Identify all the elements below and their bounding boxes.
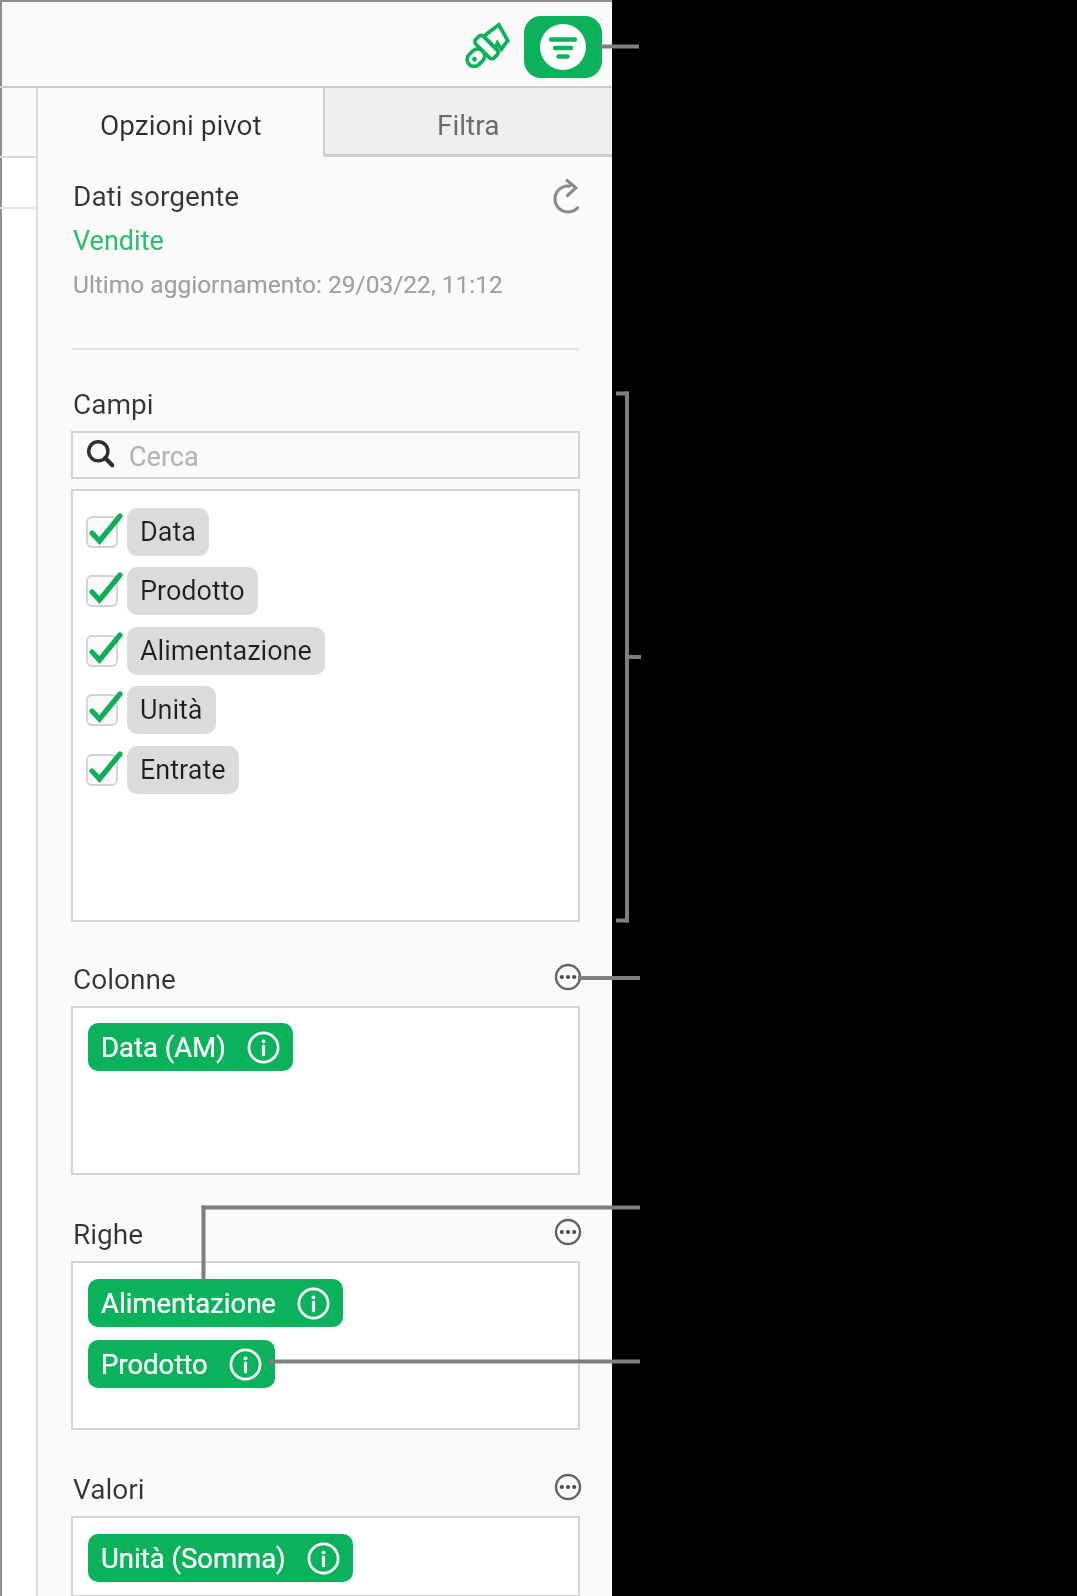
button[interactable]: Prodotto [87,567,258,615]
button[interactable]: Righe options [548,1212,588,1252]
staticText: Cerca [129,441,199,473]
button[interactable]: Alimentazione [87,627,325,675]
button[interactable]: Data [87,508,209,556]
button[interactable]: Valori options [548,1467,588,1507]
staticText: Data (AM) [101,1031,226,1063]
button[interactable]: Pivot options [524,16,602,78]
staticText: Data [140,516,196,548]
button[interactable]: Filtra [324,88,612,156]
button[interactable]: Cerca [72,432,579,478]
staticText: Entrate [140,754,226,786]
button[interactable]: Entrate [87,746,239,794]
button[interactable]: Prodotto [88,1340,275,1388]
staticText: Ultimo aggiornamento: 29/03/22, 11:12 [73,270,503,299]
button[interactable]: Format [457,14,521,78]
staticText: Campi [73,388,154,421]
staticText: Prodotto [140,575,245,607]
button[interactable]: Vendite [0,0,91,32]
button[interactable]: Unità [87,686,216,734]
staticText: Unità [140,694,203,726]
button[interactable]: Refresh [549,180,587,218]
staticText: Unità (Somma) [101,1542,286,1574]
staticText: Opzioni pivot [100,109,262,142]
staticText: Righe [73,1218,144,1251]
staticText: Filtra [437,109,500,142]
button[interactable]: Unità (Somma) [88,1534,353,1582]
staticText: Prodotto [101,1348,208,1380]
staticText: Alimentazione [140,635,312,667]
staticText: Dati sorgente [73,180,240,213]
button[interactable]: Colonne options [548,957,588,997]
staticText: Alimentazione [101,1287,276,1319]
button[interactable]: Opzioni pivot [38,88,324,156]
button[interactable]: Alimentazione [88,1279,343,1327]
button[interactable]: Data (AM) [88,1023,293,1071]
staticText: Valori [73,1473,145,1506]
staticText: Colonne [73,963,176,996]
